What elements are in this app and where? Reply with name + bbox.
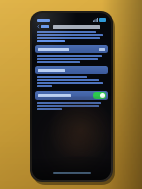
button[interactable] bbox=[35, 45, 108, 53]
button[interactable] bbox=[35, 66, 108, 74]
button[interactable]: Toggle on bbox=[35, 91, 108, 100]
other: Toggle on bbox=[93, 92, 106, 99]
button[interactable]: Back bbox=[36, 24, 50, 29]
